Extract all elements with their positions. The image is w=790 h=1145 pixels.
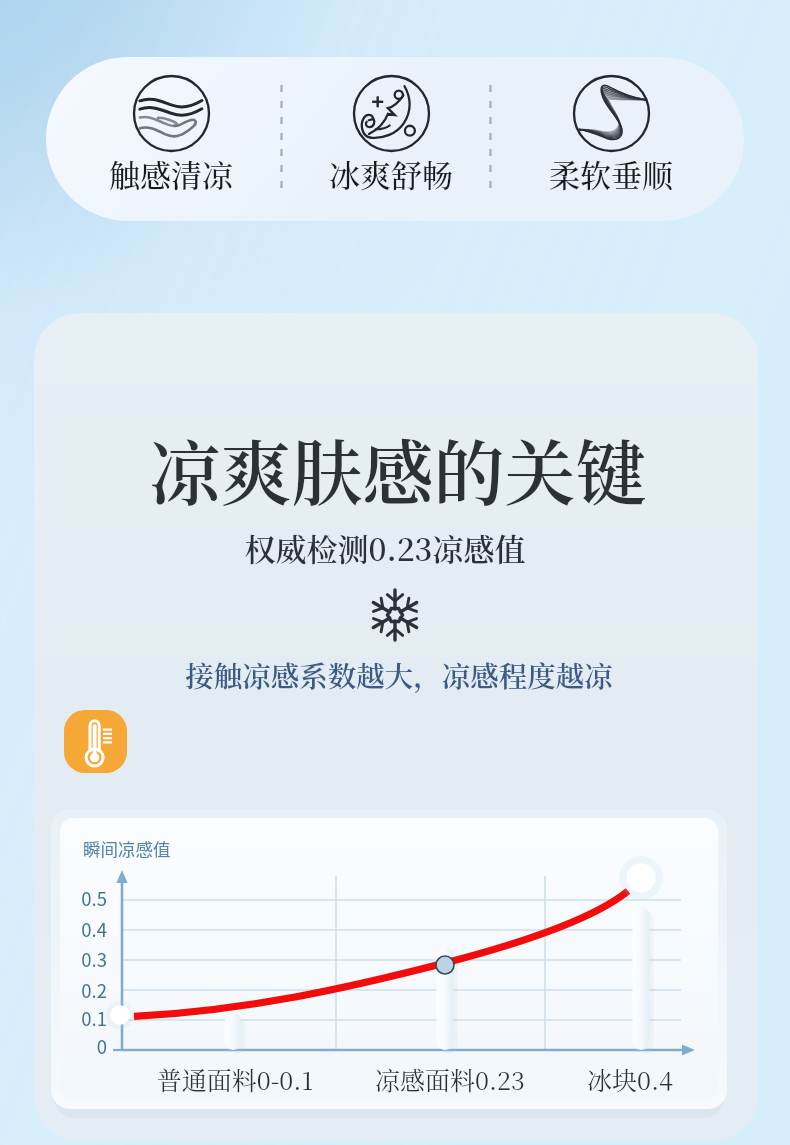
staticText: 接触凉感系数越大，凉感程度越凉 [4,654,790,695]
staticText: 冰块0.4 [480,1061,780,1097]
staticText: 0.5 [46,885,107,912]
staticText: 触感清凉 [109,151,233,196]
button[interactable] [46,57,744,221]
button[interactable]: Temperature [64,710,127,773]
button[interactable]: 柔软垂顺 [527,62,695,196]
staticText: 普通面料0-0.1 [85,1061,385,1097]
staticText: 权威检测0.23凉感值 [0,525,780,570]
button[interactable]: 冰爽舒畅 [307,62,475,196]
staticText: 0.4 [46,916,107,943]
staticText: 0.2 [46,977,107,1004]
staticText: 凉感面料0.23 [300,1061,600,1097]
staticText: 柔软垂顺 [549,151,673,196]
staticText: 0.1 [46,1005,107,1032]
staticText: 瞬间凉感值 [83,836,171,861]
staticText: 0 [46,1033,107,1060]
staticText: 凉爽肤感的关键 [3,417,790,519]
button[interactable]: 触感清凉 [87,62,255,196]
staticText: 冰爽舒畅 [329,151,453,196]
staticText: 0.3 [46,946,107,973]
